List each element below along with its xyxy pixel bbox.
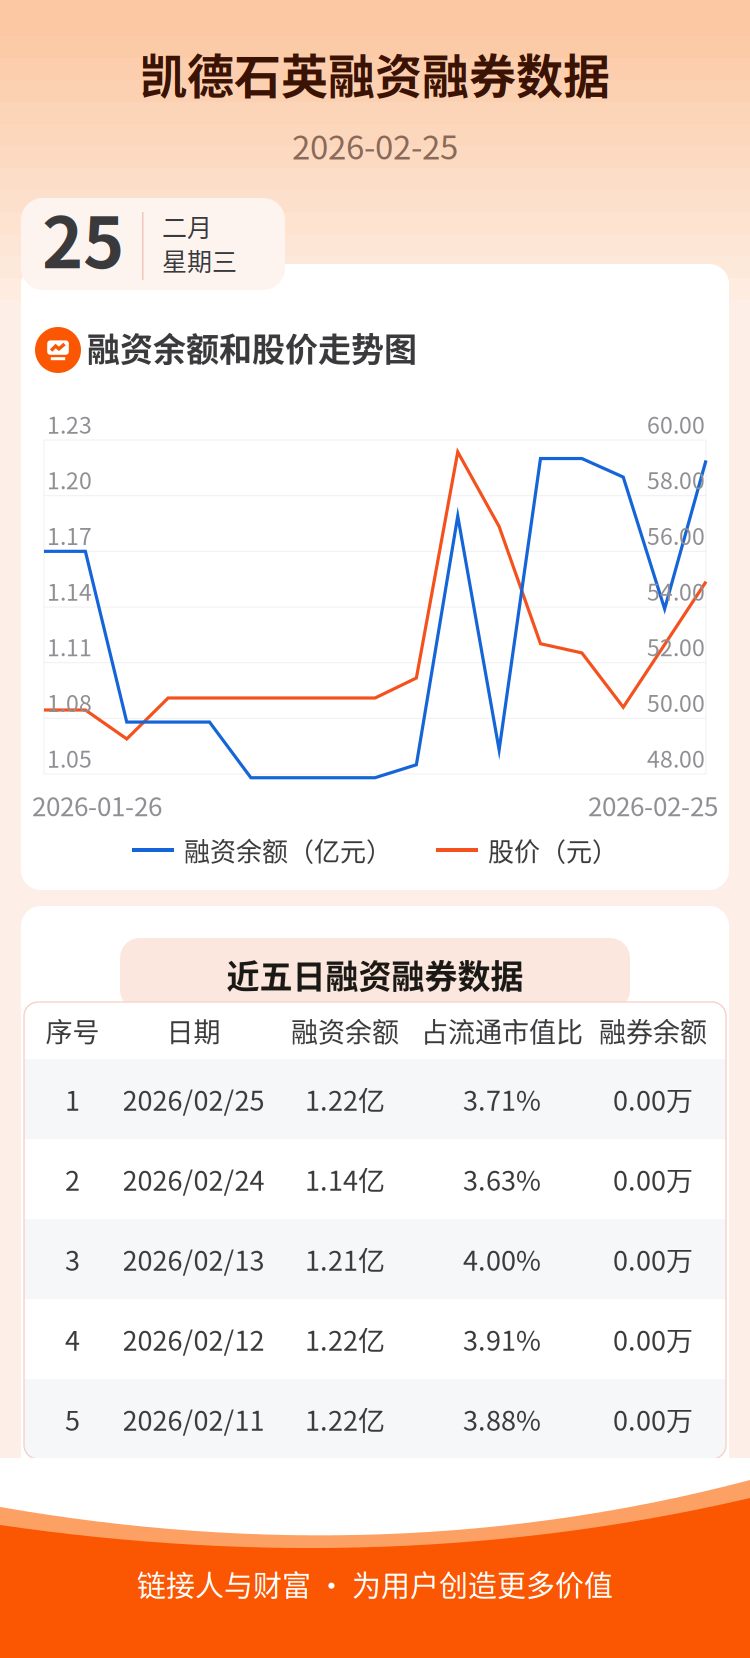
- staticText: 50.00: [647, 685, 705, 719]
- staticText: 2: [65, 1159, 80, 1199]
- staticText: 占流通市值比: [421, 1011, 583, 1050]
- staticText: 2026/02/24: [122, 1159, 264, 1199]
- staticText: 56.00: [647, 518, 705, 552]
- staticText: 0.00万: [613, 1159, 693, 1199]
- staticText: 序号: [45, 1011, 99, 1050]
- staticText: 2026-02-25: [292, 121, 458, 169]
- staticText: 链接人与财富 · 为用户创造更多价值: [137, 1563, 613, 1605]
- staticText: 58.00: [647, 463, 705, 496]
- staticText: 1.21亿: [305, 1239, 385, 1279]
- staticText: 0.00万: [613, 1239, 693, 1279]
- staticText: 融资余额: [291, 1011, 399, 1050]
- staticText: 3.88%: [463, 1399, 541, 1439]
- staticText: 2026/02/13: [122, 1239, 264, 1279]
- staticText: 股价（元）: [488, 831, 618, 869]
- staticText: 1.08: [47, 685, 92, 719]
- staticText: 48.00: [647, 741, 705, 774]
- staticText: 4: [65, 1319, 80, 1359]
- staticText: 1.11: [47, 630, 92, 663]
- staticText: 3.71%: [463, 1079, 541, 1119]
- staticText: 2026/02/25: [122, 1079, 264, 1119]
- staticText: 1.20: [47, 463, 92, 496]
- staticText: 0.00万: [613, 1399, 693, 1439]
- staticText: 0.00万: [613, 1319, 693, 1359]
- staticText: 3.63%: [463, 1159, 541, 1199]
- staticText: 1.14亿: [305, 1159, 385, 1199]
- staticText: 4.00%: [463, 1239, 541, 1279]
- staticText: 52.00: [647, 630, 705, 663]
- staticText: 星期三: [162, 242, 237, 278]
- staticText: 1: [65, 1079, 80, 1119]
- staticText: 3.91%: [463, 1319, 541, 1359]
- staticText: 1.14: [47, 574, 92, 607]
- staticText: 2026/02/11: [122, 1399, 264, 1439]
- staticText: 1.22亿: [305, 1319, 385, 1359]
- staticText: 60.00: [647, 407, 705, 440]
- staticText: 1.23: [47, 407, 92, 440]
- staticText: 1.17: [47, 518, 92, 552]
- staticText: 3: [65, 1239, 80, 1279]
- staticText: 近五日融资融券数据: [226, 950, 523, 998]
- staticText: 2026-01-26: [32, 786, 162, 824]
- staticText: 日期: [166, 1011, 220, 1050]
- staticText: 25: [42, 187, 124, 288]
- staticText: 融资余额（亿元）: [184, 831, 392, 869]
- staticText: 1.22亿: [305, 1079, 385, 1119]
- staticText: 0.00万: [613, 1079, 693, 1119]
- staticText: 2026/02/12: [122, 1319, 264, 1359]
- staticText: 融资余额和股价走势图: [87, 323, 417, 371]
- staticText: 二月: [162, 208, 212, 244]
- staticText: 凯德石英融资融券数据: [140, 39, 610, 107]
- staticText: 5: [65, 1399, 80, 1439]
- staticText: 1.22亿: [305, 1399, 385, 1439]
- staticText: 1.05: [47, 741, 92, 774]
- staticText: 54.00: [647, 574, 705, 607]
- staticText: 融券余额: [599, 1011, 707, 1050]
- staticText: 2026-02-25: [588, 786, 718, 824]
